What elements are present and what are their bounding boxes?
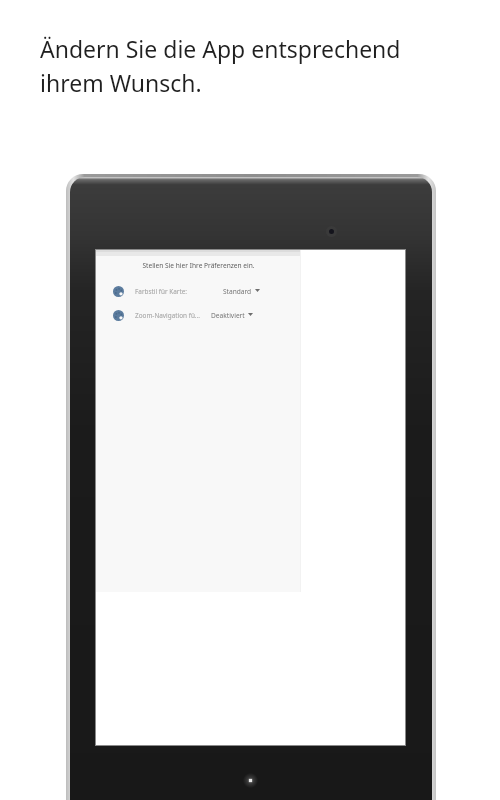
staticText: Standard — [223, 287, 252, 296]
staticText: Zoom-Navigation fü... — [135, 311, 200, 320]
button[interactable]: Farbstil für Karte: ändern — [113, 286, 124, 297]
staticText: Farbstil für Karte: — [135, 287, 188, 296]
staticText: Deaktiviert — [211, 311, 245, 320]
button[interactable]: Zoom-Navigation fü... ändern — [96, 304, 301, 327]
button[interactable]: Zoom-Navigation fü... ändern — [113, 310, 124, 321]
staticText: Stellen Sie hier Ihre Präferenzen ein. — [96, 261, 301, 270]
button[interactable]: Farbstil für Karte: ändern — [96, 280, 301, 303]
staticText: Ändern Sie die App entsprechend ihrem Wu… — [40, 33, 460, 98]
